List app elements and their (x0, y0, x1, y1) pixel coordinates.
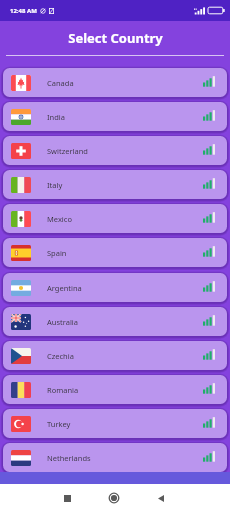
button[interactable]: India (3, 102, 227, 131)
button[interactable]: Canada (3, 68, 227, 97)
button[interactable]: Czechia (3, 341, 227, 370)
button[interactable]: Romania (3, 375, 227, 404)
button[interactable]: Mexico (3, 204, 227, 233)
staticText: Romania (47, 385, 79, 395)
staticText: Canada (47, 78, 74, 88)
staticText: India (47, 112, 65, 122)
button[interactable]: Australia (3, 307, 227, 336)
staticText: Turkey (47, 419, 71, 429)
staticText: Italy (47, 180, 63, 190)
staticText: Australia (47, 317, 78, 327)
staticText: Spain (47, 248, 67, 258)
staticText: Netherlands (47, 453, 91, 463)
button[interactable]: Turkey (3, 409, 227, 438)
staticText: Mexico (47, 214, 72, 224)
button[interactable]: Spain (3, 238, 227, 267)
staticText: Argentina (47, 283, 82, 293)
staticText: 12:48 AM (10, 7, 37, 15)
button[interactable]: Recent apps (54, 485, 80, 511)
button[interactable]: Home (101, 485, 127, 511)
button[interactable]: Back (148, 485, 174, 511)
button[interactable]: Switzerland (3, 136, 227, 165)
staticText: Switzerland (47, 146, 88, 156)
button[interactable]: Italy (3, 170, 227, 199)
staticText: Select Country (68, 29, 163, 47)
button[interactable]: Argentina (3, 273, 227, 302)
button[interactable]: Netherlands (3, 443, 227, 472)
staticText: Czechia (47, 351, 74, 361)
